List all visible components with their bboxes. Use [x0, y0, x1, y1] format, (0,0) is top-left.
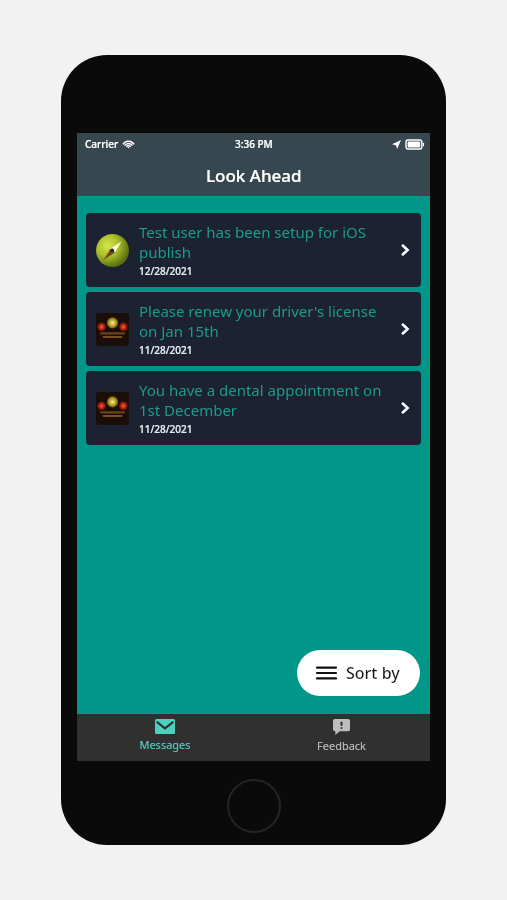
- button[interactable]: Messages: [77, 714, 253, 761]
- button[interactable]: Sort by: [297, 650, 420, 696]
- button[interactable]: Feedback: [253, 714, 430, 761]
- staticText: 11/28/2021: [139, 343, 193, 357]
- button[interactable]: You have a dental appointment on 1st Dec…: [86, 371, 421, 445]
- staticText: 12/28/2021: [139, 264, 193, 278]
- staticText: Carrier: [85, 137, 119, 151]
- staticText: Look Ahead: [206, 164, 302, 187]
- staticText: Feedback: [317, 738, 366, 753]
- button[interactable]: Test user has been setup for iOS publish: [86, 213, 421, 287]
- staticText: Please renew your driver's license on Ja…: [139, 301, 391, 341]
- staticText: Sort by: [346, 662, 400, 684]
- button[interactable]: Please renew your driver's license on Ja…: [86, 292, 421, 366]
- staticText: 11/28/2021: [139, 422, 193, 436]
- staticText: 3:36 PM: [235, 137, 273, 151]
- staticText: You have a dental appointment on 1st Dec…: [139, 380, 391, 420]
- staticText: Messages: [139, 737, 191, 752]
- staticText: Test user has been setup for iOS publish: [139, 222, 391, 262]
